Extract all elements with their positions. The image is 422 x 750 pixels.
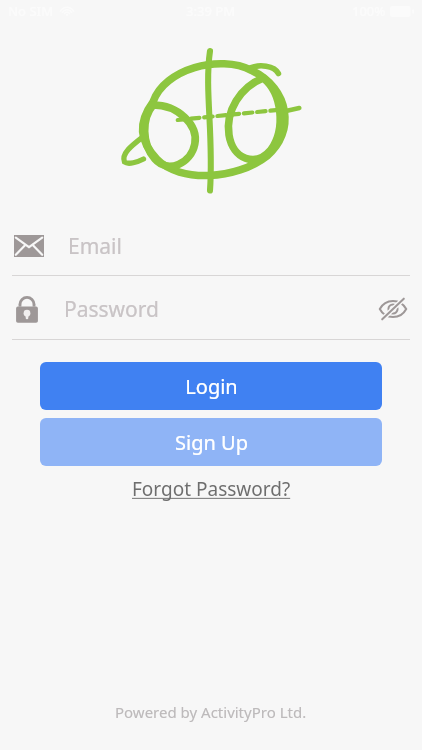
staticText: Email — [68, 232, 122, 261]
staticText: Login — [185, 373, 238, 400]
other: App logo — [115, 45, 305, 195]
button[interactable]: Show password — [378, 297, 408, 321]
staticText: Password — [64, 295, 159, 324]
button[interactable]: Forgot Password? — [124, 472, 299, 506]
other: Email — [14, 235, 44, 257]
other: Password — [14, 294, 40, 324]
button[interactable]: Password — [0, 285, 422, 333]
staticText: Powered by ActivityPro Ltd. — [115, 702, 307, 722]
button[interactable]: Email — [0, 222, 422, 270]
button[interactable]: Login — [40, 362, 382, 410]
staticText: Forgot Password? — [132, 476, 291, 502]
staticText: Sign Up — [175, 429, 248, 456]
button[interactable]: Sign Up — [40, 418, 382, 466]
